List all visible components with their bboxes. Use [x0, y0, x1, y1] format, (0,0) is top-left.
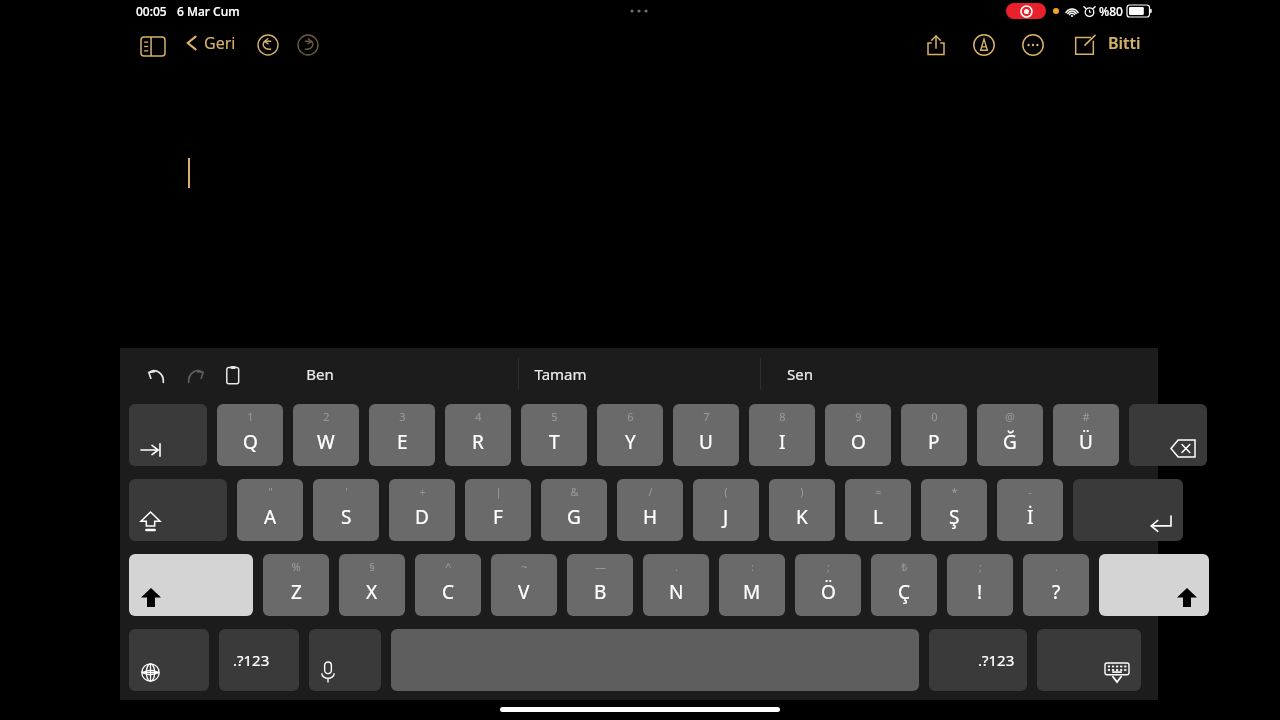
staticText: 1 [247, 409, 254, 424]
button[interactable]: Klavye değiştir [129, 629, 209, 691]
button[interactable]: : [719, 554, 785, 616]
button[interactable]: .?123 [219, 629, 299, 691]
button[interactable]: Sen [720, 352, 880, 396]
staticText: ' [345, 484, 348, 499]
button[interactable]: .?123 [929, 629, 1027, 691]
button[interactable]: . [1023, 554, 1089, 616]
staticText: Z [291, 579, 302, 605]
staticText: S [341, 504, 352, 530]
staticText: § [369, 559, 375, 574]
button[interactable]: 1 [217, 404, 283, 466]
staticText: 9 [855, 409, 862, 424]
button[interactable]: ^ [415, 554, 481, 616]
button[interactable]: 8 [749, 404, 815, 466]
staticText: X [366, 579, 378, 605]
button[interactable]: 2 [293, 404, 359, 466]
staticText: * [951, 484, 958, 499]
button[interactable]: # [1053, 404, 1119, 466]
button[interactable]: İşaretle [970, 31, 998, 59]
staticText: . [1055, 559, 1058, 574]
button[interactable]: 3 [369, 404, 435, 466]
button[interactable]: = [845, 479, 911, 541]
staticText: - [1028, 484, 1032, 499]
staticText: 2 [323, 409, 330, 424]
button[interactable]: Klavyeyi gizle [1037, 629, 1141, 691]
staticText: I [779, 429, 786, 455]
button[interactable]: % [263, 554, 329, 616]
staticText: U [699, 429, 713, 455]
button[interactable]: Satır başı [1073, 479, 1183, 541]
button[interactable]: @ [977, 404, 1043, 466]
button[interactable]: Kenar çubuğu [138, 34, 168, 58]
button[interactable]: Büyük harf kilidi [129, 479, 227, 541]
button[interactable]: 6 [597, 404, 663, 466]
staticText: ! [977, 579, 983, 605]
staticText: & [570, 484, 579, 499]
staticText: Sen [787, 364, 813, 384]
button[interactable]: Yeni not [1070, 31, 1098, 59]
staticText: # [1082, 409, 1090, 424]
button[interactable]: — [567, 554, 633, 616]
staticText: H [643, 504, 658, 530]
button[interactable]: Yapıştır [221, 362, 247, 388]
button[interactable]: 7 [673, 404, 739, 466]
staticText: %80 [1099, 3, 1123, 19]
button[interactable]: - [997, 479, 1063, 541]
button[interactable]: Shift [1099, 554, 1209, 616]
button[interactable]: ) [769, 479, 835, 541]
staticText: N [669, 579, 684, 605]
staticText: | [495, 484, 502, 499]
button[interactable]: & [541, 479, 607, 541]
staticText: G [567, 504, 581, 530]
staticText: Ş [949, 504, 960, 530]
button[interactable]: 9 [825, 404, 891, 466]
button[interactable]: ~ [491, 554, 557, 616]
button[interactable]: Sil [1129, 404, 1207, 466]
staticText: . [675, 559, 678, 574]
button[interactable]: / [617, 479, 683, 541]
button[interactable]: Sekme [129, 404, 207, 466]
button[interactable]: " [237, 479, 303, 541]
staticText: F [493, 504, 503, 530]
button[interactable]: § [339, 554, 405, 616]
button[interactable]: Ben [240, 352, 400, 396]
button[interactable]: Geri al [143, 362, 169, 388]
button[interactable]: ₺ [871, 554, 937, 616]
staticText: İ [1027, 504, 1034, 530]
staticText: O [851, 429, 866, 455]
staticText: .?123 [978, 650, 1015, 670]
button[interactable]: 0 [901, 404, 967, 466]
button[interactable]: . [643, 554, 709, 616]
button[interactable]: ; [947, 554, 1013, 616]
button[interactable]: Daha fazla [1019, 31, 1047, 59]
staticText: : [751, 559, 754, 574]
staticText: — [595, 559, 606, 574]
button[interactable]: Geri [186, 32, 236, 54]
button[interactable]: 5 [521, 404, 587, 466]
button[interactable]: İleri al [295, 32, 321, 58]
button[interactable]: İleri al [182, 362, 208, 388]
button[interactable]: Shift [129, 554, 253, 616]
button[interactable]: ' [313, 479, 379, 541]
button[interactable]: Tamam [480, 352, 640, 396]
staticText: 4 [475, 409, 482, 424]
button[interactable]: Paylaş [922, 31, 950, 59]
button[interactable]: ; [795, 554, 861, 616]
staticText: 0 [931, 409, 938, 424]
button[interactable]: | [465, 479, 531, 541]
staticText: 7 [703, 409, 710, 424]
staticText: " [268, 484, 273, 499]
staticText: 8 [779, 409, 786, 424]
button[interactable]: 4 [445, 404, 511, 466]
button[interactable]: + [389, 479, 455, 541]
button[interactable]: Dikte [309, 629, 381, 691]
button[interactable]: ( [693, 479, 759, 541]
button[interactable]: Bitti [1104, 32, 1145, 54]
staticText: E [397, 429, 408, 455]
staticText: V [518, 579, 530, 605]
staticText: ( [724, 484, 728, 499]
button[interactable]: * [921, 479, 987, 541]
button[interactable]: Geri al [255, 32, 281, 58]
staticText: ) [800, 484, 804, 499]
